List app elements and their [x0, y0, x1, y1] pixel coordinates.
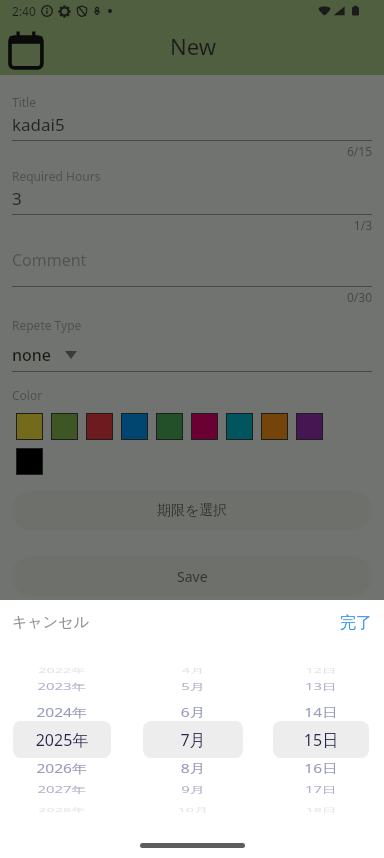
staticText: Required Hours [12, 168, 101, 184]
button[interactable]: キャンセル [12, 613, 89, 632]
staticText: 5月 [146, 681, 239, 693]
button[interactable]: 12日 [273, 645, 369, 825]
staticText: 4月 [148, 666, 238, 675]
staticText: 15日 [273, 729, 369, 751]
staticText: Save [177, 567, 208, 586]
staticText: 2027年 [16, 784, 107, 796]
staticText: 6月 [144, 703, 241, 720]
staticText: 13日 [276, 681, 366, 693]
button[interactable]: 完了 [340, 613, 372, 633]
button[interactable]: none [0, 344, 77, 366]
staticText: Repete Type [12, 317, 82, 333]
staticText: none [12, 344, 52, 366]
staticText: 7月 [143, 729, 243, 751]
staticText: Title [12, 94, 36, 110]
staticText: 16日 [274, 759, 367, 776]
staticText: 2:40 [12, 3, 36, 19]
staticText: 1/3 [0, 217, 372, 233]
staticText: 2022年 [18, 666, 106, 675]
staticText: 14日 [274, 703, 367, 720]
staticText: 8月 [144, 759, 241, 776]
staticText: 10月 [148, 806, 238, 814]
button[interactable]: Save [12, 556, 372, 596]
button[interactable]: Calendar [4, 29, 48, 73]
staticText: kadai5 [12, 113, 65, 136]
staticText: Color [12, 387, 43, 403]
staticText: 期限を選択 [157, 502, 228, 520]
staticText: Comment [12, 249, 87, 271]
button[interactable]: 期限を選択 [12, 491, 372, 531]
staticText: 2026年 [14, 759, 110, 776]
staticText: 17日 [276, 784, 366, 796]
staticText: 9月 [146, 784, 239, 796]
staticText: 12日 [278, 666, 364, 675]
button[interactable]: 2022年 [13, 645, 111, 825]
staticText: 0/30 [0, 289, 372, 305]
staticText: 18日 [278, 806, 364, 814]
staticText: 6/15 [0, 143, 372, 159]
button[interactable]: 4月 [143, 645, 243, 825]
staticText: 2024年 [14, 703, 110, 720]
staticText: 3 [12, 187, 22, 210]
staticText: 2028年 [18, 806, 106, 814]
staticText: New [170, 31, 216, 61]
staticText: 2023年 [16, 681, 107, 693]
staticText: 2025年 [13, 729, 111, 751]
